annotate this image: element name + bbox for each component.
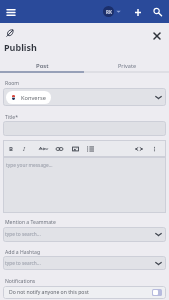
button[interactable]: More: [147, 140, 161, 157]
staticText: type to search...: [5, 231, 41, 238]
button[interactable]: Do not notify anyone on this post: [3, 286, 166, 299]
button[interactable]: Font size: [36, 140, 50, 157]
staticText: Konverse: [21, 94, 46, 102]
button[interactable]: List: [83, 140, 97, 157]
staticText: Title*: [5, 114, 18, 121]
staticText: Private: [118, 62, 136, 69]
button[interactable]: Code: [132, 140, 146, 157]
button[interactable]: Private: [84, 60, 169, 71]
staticText: Publish: [4, 41, 37, 53]
button[interactable]: Search: [149, 4, 165, 20]
button[interactable]: RK: [102, 6, 122, 17]
button[interactable]: type to search...: [3, 256, 166, 270]
staticText: type your message...: [6, 162, 53, 169]
staticText: Post: [36, 62, 49, 70]
button[interactable]: [3, 121, 166, 136]
button[interactable]: Image: [68, 140, 82, 157]
staticText: Room: [5, 80, 20, 87]
button[interactable]: Close: [150, 29, 164, 43]
staticText: B: [9, 145, 13, 153]
staticText: Add a Hashtag: [5, 249, 41, 256]
button[interactable]: Menu: [3, 4, 19, 20]
button[interactable]: Post: [0, 60, 84, 71]
button[interactable]: B: [5, 140, 17, 157]
staticText: I: [23, 145, 25, 153]
staticText: Do not notify anyone on this post: [9, 289, 89, 296]
button[interactable]: I: [18, 140, 30, 157]
staticText: type to search...: [5, 260, 41, 267]
button[interactable]: Add: [130, 4, 146, 20]
staticText: Mention a Teammate: [5, 219, 56, 226]
staticText: RK: [106, 9, 112, 15]
button[interactable]: Link: [52, 140, 66, 157]
button[interactable]: type to search...: [3, 227, 166, 242]
button[interactable]: type your message...: [3, 157, 166, 213]
staticText: Notifications: [5, 278, 36, 285]
button[interactable]: Konverse: [3, 88, 166, 106]
